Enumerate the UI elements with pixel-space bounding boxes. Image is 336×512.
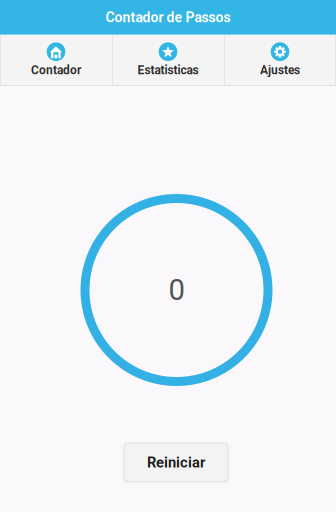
- staticText: Estatisticas: [137, 63, 198, 77]
- button[interactable]: Ajustes: [224, 34, 336, 85]
- staticText: 0: [168, 273, 184, 307]
- button[interactable]: Estatisticas: [112, 34, 224, 85]
- staticText: Contador: [31, 63, 81, 77]
- button[interactable]: Contador: [0, 34, 112, 85]
- staticText: Contador de Passos: [105, 9, 230, 26]
- button[interactable]: Reiniciar: [124, 443, 228, 482]
- staticText: Ajustes: [260, 63, 300, 77]
- staticText: Reiniciar: [147, 454, 205, 471]
